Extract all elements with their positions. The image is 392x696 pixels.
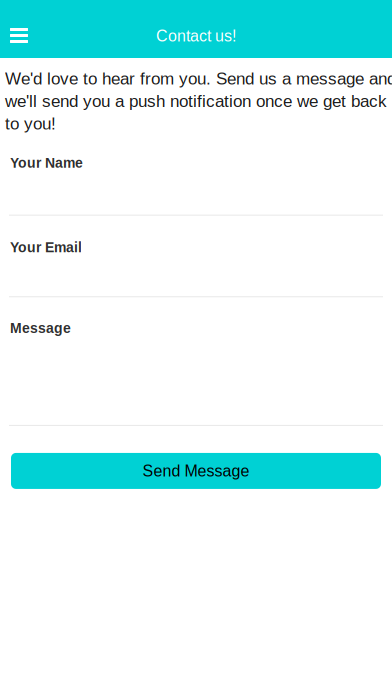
staticText: Your Email — [10, 240, 82, 255]
staticText: We'd love to hear from you. Send us a me… — [5, 69, 392, 133]
button[interactable]: Menu — [0, 0, 42, 58]
staticText: Send Message — [142, 462, 249, 480]
button[interactable]: Message — [0, 297, 392, 426]
staticText: Message — [10, 320, 71, 336]
staticText: Your Name — [10, 155, 83, 171]
button[interactable]: Send Message — [11, 453, 381, 489]
button[interactable]: Your Email — [0, 216, 392, 297]
staticText: Contact us! — [156, 27, 236, 45]
button[interactable]: Your Name — [0, 155, 392, 216]
